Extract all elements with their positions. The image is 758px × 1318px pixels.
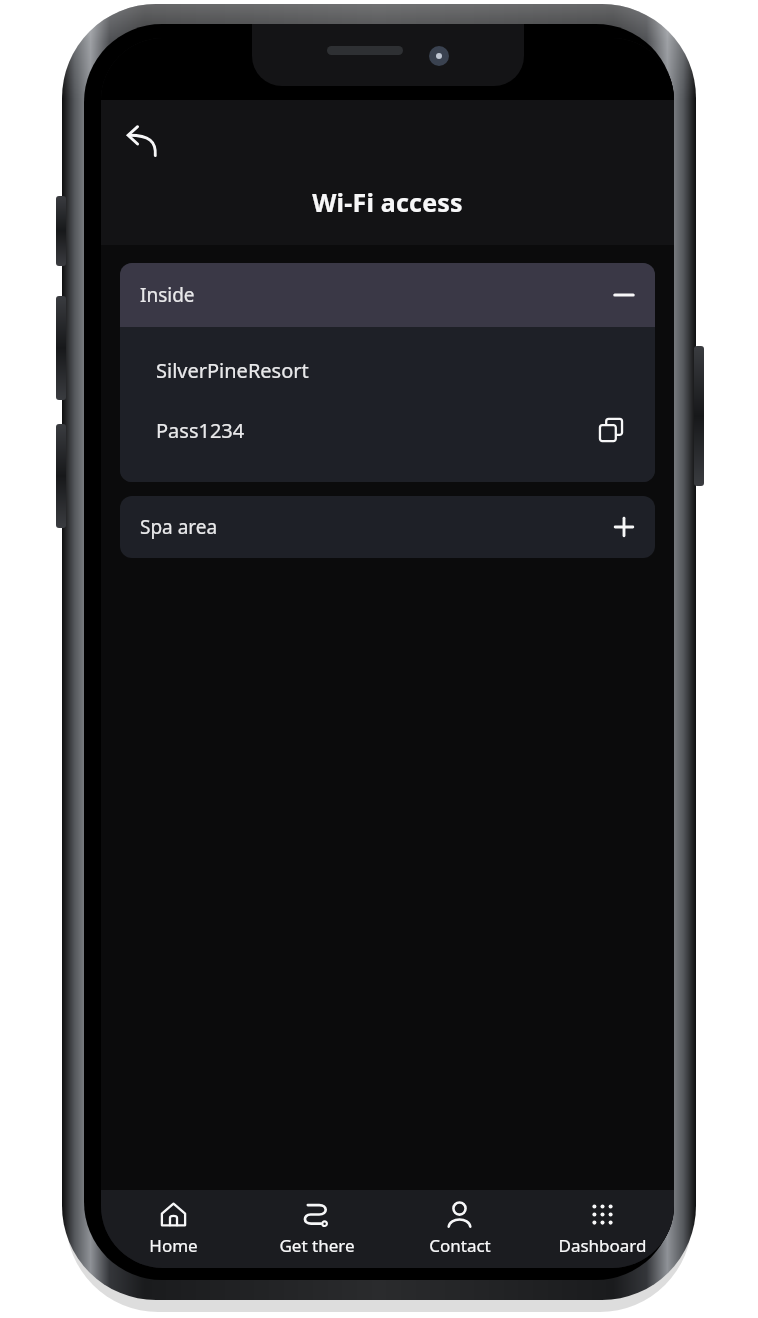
button[interactable]: Contact	[388, 1195, 531, 1263]
button[interactable]: Dashboard	[531, 1195, 674, 1263]
button[interactable]: Inside	[120, 263, 655, 327]
staticText: Pass1234	[156, 417, 245, 444]
button[interactable]: Get there	[245, 1195, 388, 1263]
staticText: Spa area	[140, 514, 218, 540]
button[interactable]: Spa area	[120, 496, 655, 558]
staticText: Home	[149, 1234, 198, 1257]
staticText: Dashboard	[558, 1234, 647, 1257]
staticText: Get there	[279, 1234, 355, 1257]
staticText: SilverPineResort	[156, 357, 309, 384]
button[interactable]: Back	[109, 110, 173, 174]
staticText: Wi-Fi access	[101, 185, 674, 219]
button[interactable]: Copy password	[589, 408, 633, 452]
staticText: Contact	[429, 1234, 491, 1257]
staticText: Inside	[140, 282, 195, 308]
button[interactable]: Home	[101, 1195, 245, 1263]
